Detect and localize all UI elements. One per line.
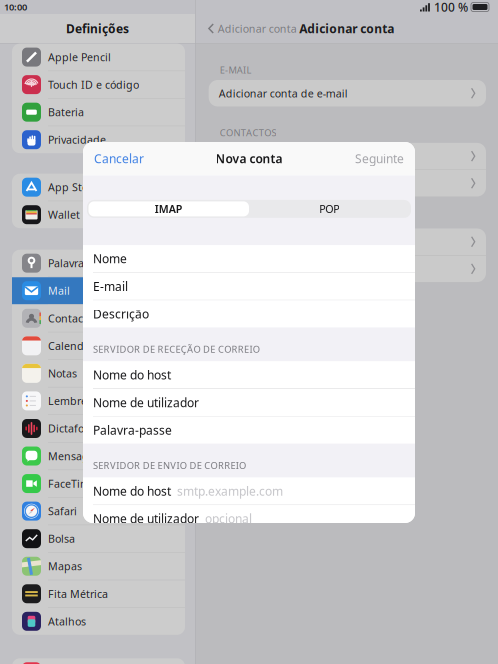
staticText: Cancelar <box>94 151 144 167</box>
button[interactable]: Nome <box>83 245 415 272</box>
staticText: Dictafone <box>48 421 97 436</box>
button[interactable]: Adicionar conta <box>196 14 297 43</box>
button[interactable]: Adicionar conta de e-mail <box>209 80 486 106</box>
button[interactable]: Palavra-passe <box>83 417 415 444</box>
button[interactable]: Dictafone <box>12 415 185 442</box>
staticText: Palavras-passe <box>48 256 121 270</box>
staticText: Nome de utilizador <box>93 394 199 410</box>
staticText: Fita Métrica <box>48 587 108 601</box>
button[interactable] <box>209 143 486 169</box>
staticText: Atalhos <box>48 614 86 628</box>
staticText: 100 % <box>434 0 468 15</box>
button[interactable]: Palavras-passe <box>12 250 185 277</box>
button[interactable]: Fita Métrica <box>12 580 185 607</box>
staticText: Notas <box>48 366 77 380</box>
button[interactable]: Privacidade <box>12 126 185 153</box>
button[interactable]: POP <box>249 201 409 216</box>
staticText: Privacidade <box>48 133 106 147</box>
button[interactable]: Mapas <box>12 553 185 580</box>
button[interactable]: Mensagens <box>12 442 185 469</box>
staticText: Mail <box>48 284 70 298</box>
staticText: E-mail <box>93 278 128 294</box>
button[interactable]: Bateria <box>12 99 185 126</box>
button[interactable]: Descrição <box>83 300 415 327</box>
button[interactable] <box>209 256 486 282</box>
button[interactable]: Apple Pencil <box>12 44 185 70</box>
staticText: IMAP <box>155 202 183 216</box>
button[interactable]: Mail <box>12 277 185 304</box>
button[interactable]: FaceTime <box>12 470 185 497</box>
staticText: Seguinte <box>355 151 404 167</box>
button[interactable]: Nome do host <box>83 361 415 388</box>
staticText: CONTACTOS <box>220 126 276 139</box>
staticText: Mapas <box>48 559 82 573</box>
staticText: FaceTime <box>48 476 96 491</box>
staticText: Descrição <box>93 306 149 322</box>
staticText: Contactos <box>48 311 98 325</box>
button[interactable]: E-mail <box>83 273 415 300</box>
staticText: Nome <box>93 251 127 267</box>
button[interactable]: Seguinte <box>355 142 415 175</box>
button[interactable]: Música <box>12 658 185 664</box>
button[interactable]: Contactos <box>12 305 185 332</box>
staticText: Mensagens <box>48 449 107 463</box>
staticText: Calendário <box>48 339 103 353</box>
staticText: SERVIDOR DE ENVIO DE CORREIO <box>93 459 246 472</box>
staticText: Nome de utilizador <box>93 511 199 527</box>
staticText: Nome do host <box>93 483 171 499</box>
button[interactable]: Calendário <box>12 332 185 359</box>
button[interactable]: Safari <box>12 498 185 524</box>
staticText: 10:00 <box>4 1 27 13</box>
staticText: Bateria <box>48 105 84 119</box>
staticText: Nome do host <box>93 367 171 383</box>
button[interactable]: App Store <box>12 174 185 201</box>
button[interactable]: Wallet e Apple Pay <box>12 201 185 228</box>
staticText: opcional <box>205 511 252 527</box>
staticText: Palavra-passe <box>93 422 172 438</box>
button[interactable]: Bolsa <box>12 525 185 552</box>
button[interactable]: IMAP <box>88 201 249 216</box>
staticText: Apple Pencil <box>48 50 111 64</box>
button[interactable]: Touch ID e código <box>12 71 185 98</box>
button[interactable]: Nome do host <box>83 478 415 505</box>
button[interactable]: Cancelar <box>83 142 144 175</box>
button[interactable] <box>209 170 486 196</box>
staticText: Lembretes <box>48 394 102 408</box>
button[interactable]: Nome de utilizador <box>83 389 415 416</box>
button[interactable]: Nome de utilizador <box>83 505 415 532</box>
staticText: Nova conta <box>215 151 282 167</box>
staticText: E-MAIL <box>220 64 251 76</box>
staticText: Safari <box>48 504 77 518</box>
staticText: Touch ID e código <box>48 77 139 92</box>
staticText: Adicionar conta <box>218 21 297 36</box>
button[interactable]: Lembretes <box>12 387 185 414</box>
staticText: Adicionar conta de e-mail <box>219 86 348 100</box>
staticText: App Store <box>48 180 98 194</box>
staticText: smtp.example.com <box>177 483 283 499</box>
staticText: Wallet e Apple Pay <box>48 208 142 222</box>
button[interactable] <box>209 228 486 255</box>
staticText: POP <box>319 202 339 216</box>
staticText: Adicionar conta <box>299 20 394 36</box>
staticText: Definições <box>66 20 129 36</box>
button[interactable]: Notas <box>12 360 185 387</box>
staticText: Bolsa <box>48 532 75 546</box>
button[interactable]: Atalhos <box>12 608 185 635</box>
staticText: SERVIDOR DE RECEÇÃO DE CORREIO <box>93 343 260 355</box>
